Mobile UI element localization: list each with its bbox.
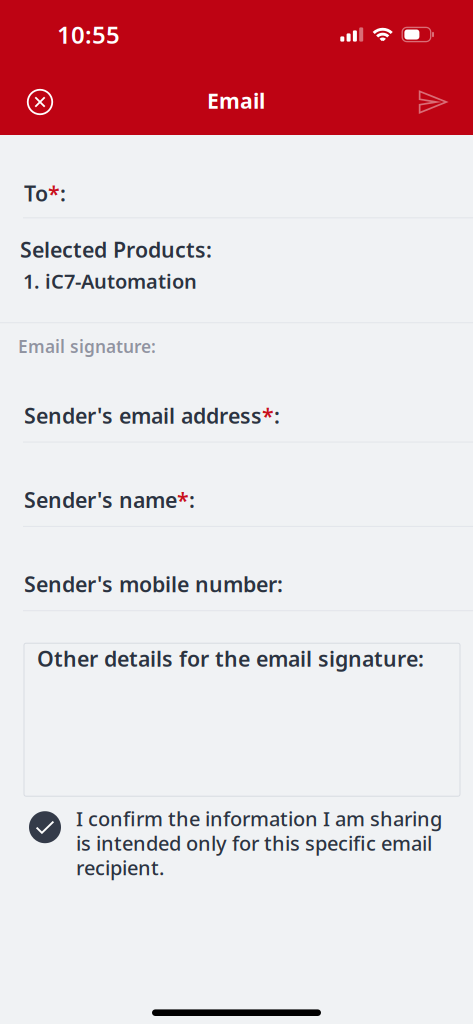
- staticText: 10:55: [57, 19, 120, 50]
- staticText: Other details for the email signature:: [37, 644, 424, 672]
- staticText: Sender's name: [24, 485, 177, 514]
- staticText: Sender's mobile number: [24, 570, 277, 598]
- staticText: Sender's email address: [24, 401, 262, 429]
- staticText: To: [24, 179, 48, 207]
- button[interactable]: Sender's mobile number: [0, 527, 473, 611]
- button[interactable]: Send: [392, 69, 473, 135]
- staticText: :: [277, 570, 283, 598]
- button[interactable]: Confirm: [23, 805, 67, 849]
- staticText: *: [262, 401, 274, 429]
- button[interactable]: Sender's name: [0, 442, 473, 527]
- button[interactable]: Sender's email address: [0, 373, 473, 442]
- staticText: Email signature:: [18, 335, 156, 358]
- button[interactable]: To: [0, 135, 473, 218]
- staticText: I confirm the information I am sharing i…: [76, 805, 442, 881]
- staticText: Selected Products:: [20, 235, 212, 264]
- staticText: :: [274, 401, 280, 429]
- staticText: Email: [207, 86, 265, 115]
- staticText: :: [189, 485, 195, 514]
- staticText: :: [60, 179, 66, 207]
- button[interactable]: Other details for the email signature:: [0, 611, 473, 796]
- staticText: *: [177, 485, 189, 514]
- staticText: 1. iC7-Automation: [23, 268, 197, 294]
- staticText: *: [48, 179, 60, 207]
- button[interactable]: Close: [0, 69, 80, 135]
